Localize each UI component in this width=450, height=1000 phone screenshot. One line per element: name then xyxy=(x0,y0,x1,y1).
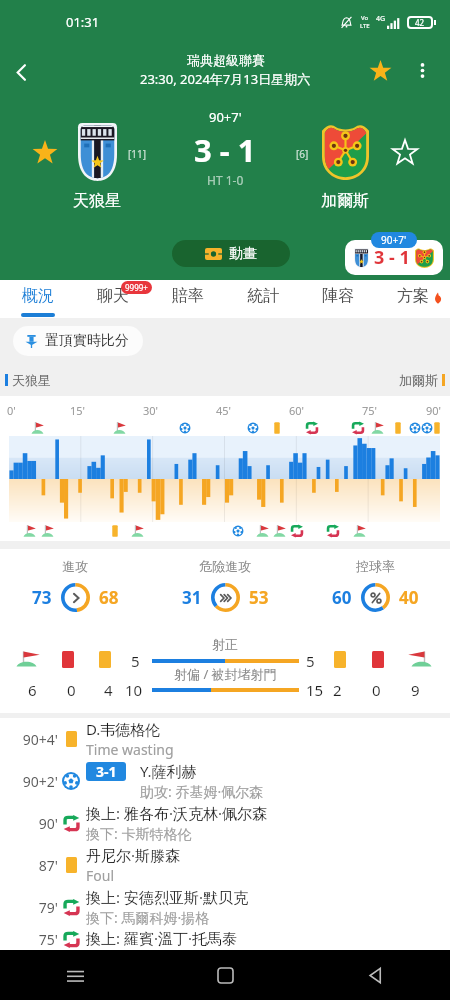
staticText: 進攻 xyxy=(62,558,88,574)
staticText: 換上: 安德烈亚斯·默贝克 xyxy=(86,887,248,907)
button[interactable]: 置頂實時比分 xyxy=(13,326,143,356)
staticText: 聊天 xyxy=(97,286,129,306)
staticText: 75' xyxy=(6,930,58,949)
staticText: 0 xyxy=(67,680,76,700)
button[interactable]: 賠率 xyxy=(150,280,225,318)
staticText: 0' xyxy=(7,403,16,418)
staticText: 90+2' xyxy=(6,772,58,791)
staticText: 42 xyxy=(415,17,425,28)
staticText: Foul xyxy=(86,866,114,885)
staticText: 90' xyxy=(426,403,442,418)
button[interactable]: Favourite away team xyxy=(391,138,419,166)
staticText: 換上: 羅賓·溫丁·托馬泰 xyxy=(86,928,237,948)
staticText: 3 - 1 xyxy=(194,129,256,171)
staticText: 丹尼尔·斯滕森 xyxy=(86,845,181,865)
staticText: 3 - 1 xyxy=(374,245,410,270)
staticText: 陣容 xyxy=(322,286,354,306)
button[interactable]: Favourite home team xyxy=(31,138,59,166)
button[interactable]: Favourite match xyxy=(362,52,398,88)
staticText: 53 xyxy=(249,586,269,609)
staticText: 加爾斯 xyxy=(399,372,438,388)
button[interactable]: 3 - 1 xyxy=(345,240,443,275)
staticText: 60 xyxy=(332,586,352,609)
button[interactable]: 動畫 xyxy=(172,240,290,267)
staticText: [6] xyxy=(296,147,309,161)
button[interactable]: 陣容 xyxy=(300,280,375,318)
staticText: 73 xyxy=(32,586,52,609)
button[interactable]: Back xyxy=(300,950,450,1000)
button[interactable]: 87' xyxy=(0,844,450,886)
button[interactable]: More options xyxy=(404,52,440,88)
staticText: 概況 xyxy=(22,286,54,306)
button[interactable]: 75' xyxy=(0,928,450,950)
staticText: 60' xyxy=(289,403,305,418)
staticText: 0 xyxy=(372,680,381,700)
staticText: 瑞典超級聯賽 xyxy=(187,52,265,68)
button[interactable]: 統計 xyxy=(225,280,300,318)
staticText: 5 xyxy=(131,651,140,671)
staticText: 90+7' xyxy=(381,233,407,247)
button[interactable]: Back xyxy=(1,52,41,92)
staticText: 87' xyxy=(6,856,58,875)
staticText: 9 xyxy=(411,680,420,700)
button[interactable]: 聊天 xyxy=(75,280,150,318)
staticText: 68 xyxy=(99,586,119,609)
staticText: 23:30, 2024年7月13日星期六 xyxy=(140,70,311,88)
staticText: 控球率 xyxy=(356,558,395,574)
staticText: 45' xyxy=(216,403,232,418)
staticText: 加爾斯 xyxy=(316,191,374,211)
staticText: 2 xyxy=(333,680,342,700)
staticText: 助攻: 乔基姆·佩尔森 xyxy=(140,782,264,801)
staticText: 4G xyxy=(376,14,386,24)
staticText: 75' xyxy=(362,403,378,418)
staticText: 天狼星 xyxy=(12,372,51,388)
staticText: 90' xyxy=(6,814,58,833)
staticText: 換上: 雅各布·沃克林·佩尔森 xyxy=(86,803,267,823)
button[interactable]: 90+4' xyxy=(0,718,450,760)
staticText: 15 xyxy=(306,680,324,700)
staticText: 30' xyxy=(143,403,159,418)
staticText: Vo xyxy=(361,14,369,22)
staticText: 6 xyxy=(28,680,37,700)
staticText: 方案 xyxy=(397,286,429,306)
staticText: 換下: 馬爾科姆·揚格 xyxy=(86,908,210,927)
button[interactable]: 90+2' xyxy=(0,760,450,802)
button[interactable]: 概況 xyxy=(0,280,75,318)
staticText: 置頂實時比分 xyxy=(45,332,129,350)
staticText: 40 xyxy=(399,586,419,609)
staticText: 01:31 xyxy=(66,13,100,31)
staticText: 90+7' xyxy=(209,108,242,126)
button[interactable]: 79' xyxy=(0,886,450,928)
button[interactable]: Home xyxy=(150,950,300,1000)
staticText: 79' xyxy=(6,898,58,917)
staticText: 15' xyxy=(70,403,86,418)
staticText: HT 1-0 xyxy=(207,172,244,188)
staticText: 10 xyxy=(125,680,143,700)
button[interactable]: 90' xyxy=(0,802,450,844)
staticText: 賠率 xyxy=(172,286,204,306)
staticText: D.韦德格伦 xyxy=(86,719,161,739)
staticText: 天狼星 xyxy=(68,191,126,211)
staticText: 危險進攻 xyxy=(199,558,251,574)
staticText: [11] xyxy=(128,147,147,161)
staticText: 5 xyxy=(306,651,315,671)
staticText: 31 xyxy=(182,586,202,609)
staticText: 4 xyxy=(104,680,113,700)
staticText: 射正 xyxy=(212,636,238,652)
button[interactable]: 方案 xyxy=(375,280,450,318)
staticText: 90+4' xyxy=(6,730,58,749)
staticText: Y.薩利赫 xyxy=(140,761,197,781)
staticText: Time wasting xyxy=(86,740,174,759)
staticText: 9999+ xyxy=(125,282,148,293)
staticText: 統計 xyxy=(247,286,279,306)
staticText: 換下: 卡斯特格伦 xyxy=(86,824,192,843)
button[interactable]: Recents xyxy=(0,950,150,1000)
staticText: LTE xyxy=(360,22,370,30)
staticText: 射偏 / 被封堵射門 xyxy=(174,665,277,683)
staticText: 動畫 xyxy=(229,245,257,263)
staticText: 3-1 xyxy=(96,762,117,781)
